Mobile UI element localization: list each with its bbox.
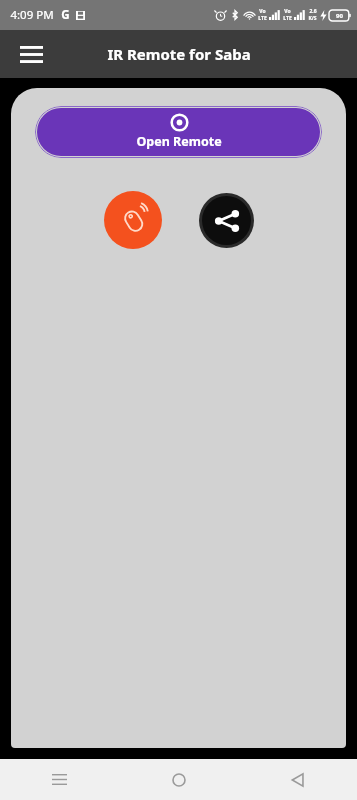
- staticText: IR Remote for Saba: [107, 44, 251, 64]
- staticText: Vo: [284, 8, 291, 15]
- staticText: G: [61, 7, 70, 23]
- staticText: Vo: [259, 8, 266, 15]
- button[interactable]: Share: [202, 196, 251, 245]
- staticText: 90: [336, 12, 343, 20]
- button[interactable]: Recent apps: [0, 759, 119, 800]
- staticText: LTE: [258, 15, 267, 22]
- button[interactable]: Open Remote: [37, 108, 320, 156]
- button[interactable]: Home: [119, 759, 238, 800]
- button[interactable]: Remote: [104, 191, 162, 249]
- button[interactable]: Back: [238, 759, 357, 800]
- staticText: K/S: [308, 15, 317, 22]
- staticText: 2.6: [309, 8, 317, 15]
- staticText: LTE: [283, 15, 292, 22]
- button[interactable]: Open navigation menu: [14, 37, 48, 71]
- staticText: 4:09 PM: [10, 7, 54, 23]
- staticText: Open Remote: [136, 133, 222, 150]
